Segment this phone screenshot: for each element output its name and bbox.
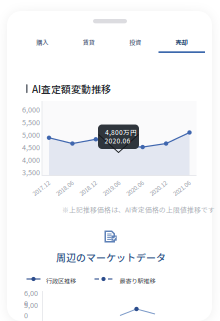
- staticText: 売却: [176, 38, 188, 47]
- staticText: 5,500: [22, 117, 40, 127]
- staticText: AI査定額変動推移: [32, 81, 111, 96]
- staticText: 6,000: [22, 104, 40, 115]
- staticText: 6,000: [24, 288, 38, 308]
- staticText: 2018.12: [76, 178, 96, 186]
- staticText: 4,500: [22, 142, 40, 152]
- staticText: 5,000: [22, 129, 40, 140]
- staticText: 2021.06: [169, 178, 189, 186]
- staticText: 賃貸: [83, 38, 95, 47]
- button[interactable]: 売却: [158, 33, 205, 53]
- staticText: 3,500: [22, 167, 40, 177]
- staticText: 2020.06: [104, 136, 130, 145]
- staticText: 2019.06: [99, 178, 119, 186]
- staticText: 購入: [36, 38, 48, 47]
- staticText: 2020.06: [123, 178, 143, 186]
- staticText: 5,000: [24, 300, 38, 320]
- staticText: 最寄り駅推移: [119, 276, 155, 285]
- staticText: 2018.06: [52, 178, 72, 186]
- button[interactable]: 購入: [19, 33, 65, 53]
- staticText: 投資: [129, 38, 141, 47]
- button[interactable]: 賃貸: [65, 33, 112, 53]
- staticText: 2017.12: [29, 178, 49, 186]
- staticText: 4,000: [22, 154, 40, 165]
- staticText: 周辺のマーケットデータ: [56, 250, 166, 264]
- staticText: ※上記推移価格は、AI査定価格の上限値推移です: [62, 204, 215, 214]
- button[interactable]: Dismiss sheet: [93, 19, 127, 23]
- button[interactable]: 投資: [112, 33, 158, 53]
- staticText: 4,800万円: [105, 127, 137, 137]
- staticText: 行政区推移: [46, 276, 76, 285]
- staticText: 2020.12: [146, 178, 166, 186]
